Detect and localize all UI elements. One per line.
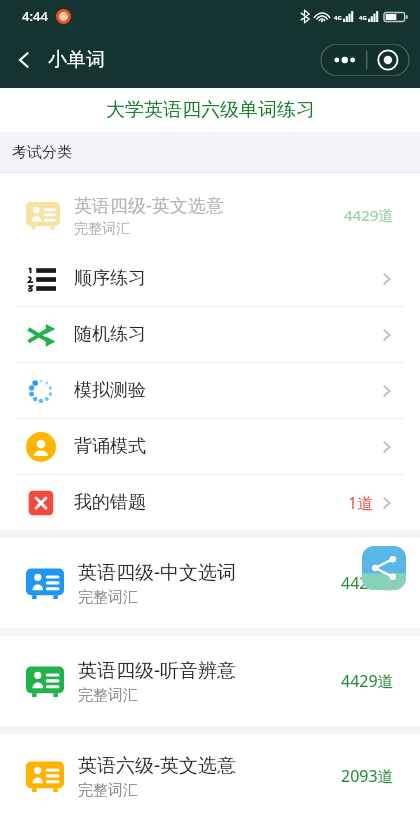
staticText: 小单词 xyxy=(48,48,105,72)
button[interactable]: 英语四级-中文选词 xyxy=(0,538,420,628)
staticText: 完整词汇 xyxy=(78,686,138,705)
staticText: 英语四级-听音辨意 xyxy=(78,657,237,683)
staticText: 4429道 xyxy=(341,572,394,594)
staticText: 4G xyxy=(359,14,367,22)
button[interactable]: 模拟测验 xyxy=(0,363,420,418)
staticText: 随机练习 xyxy=(74,323,380,346)
staticText: 顺序练习 xyxy=(74,267,380,290)
staticText: 我的错题 xyxy=(74,491,348,514)
button[interactable]: Share xyxy=(362,546,406,590)
staticText: 4429道 xyxy=(344,205,394,225)
staticText: 英语六级-英文选意 xyxy=(78,752,237,778)
staticText: 2093道 xyxy=(341,765,394,787)
staticText: 考试分类 xyxy=(12,143,72,162)
button[interactable]: 随机练习 xyxy=(0,307,420,362)
staticText: 4429道 xyxy=(341,670,394,692)
button[interactable]: 背诵模式 xyxy=(0,419,420,474)
button[interactable]: Back xyxy=(0,42,115,78)
staticText: 4:44 xyxy=(22,7,48,25)
button[interactable]: 我的错题 xyxy=(0,475,420,530)
staticText: 大学英语四六级单词练习 xyxy=(106,98,315,122)
button[interactable]: 英语四级-英文选意 xyxy=(0,179,420,251)
staticText: 1道 xyxy=(348,492,374,514)
button[interactable]: 英语六级-英文选意 xyxy=(0,734,420,817)
staticText: 背诵模式 xyxy=(74,435,380,458)
staticText: 完整词汇 xyxy=(78,588,138,607)
staticText: 英语四级-英文选意 xyxy=(74,193,224,218)
button[interactable]: 顺序练习 xyxy=(0,251,420,306)
staticText: 模拟测验 xyxy=(74,379,380,402)
button[interactable]: Menu xyxy=(320,44,410,76)
staticText: 完整词汇 xyxy=(78,781,138,800)
staticText: 完整词汇 xyxy=(74,220,130,238)
staticText: 英语四级-中文选词 xyxy=(78,559,237,585)
other: Back xyxy=(14,50,34,70)
button[interactable]: 英语四级-听音辨意 xyxy=(0,636,420,726)
staticText: 4G xyxy=(334,14,342,22)
